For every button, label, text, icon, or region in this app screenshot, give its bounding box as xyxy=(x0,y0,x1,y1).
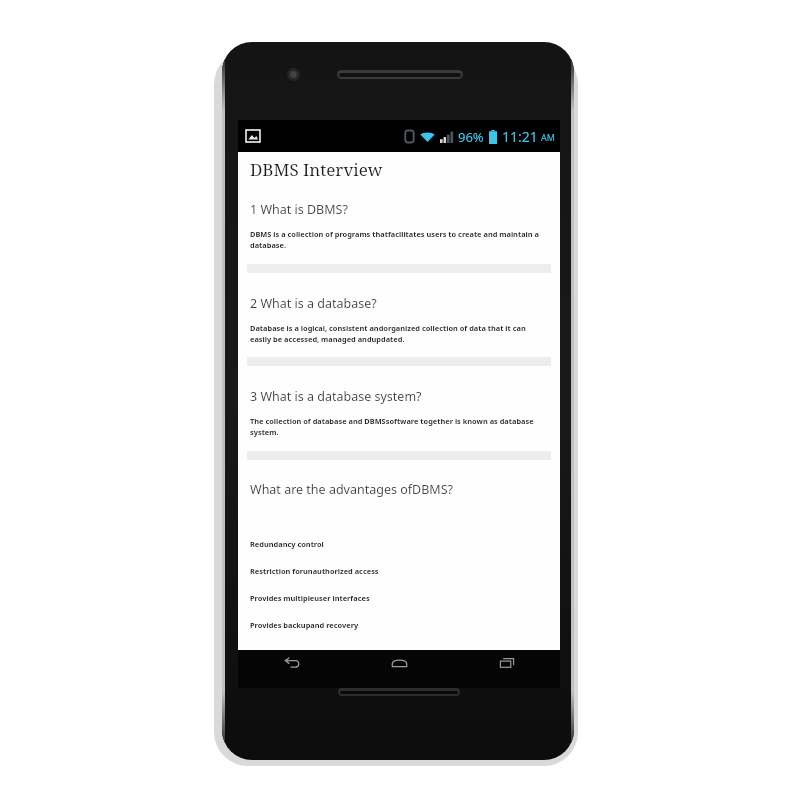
staticText: 11:21 xyxy=(502,127,538,146)
button[interactable]: 3 What is a database system? xyxy=(238,388,560,405)
button[interactable]: Recent apps xyxy=(453,650,560,688)
staticText: Provides multipleuser interfaces xyxy=(250,593,544,603)
staticText: What are the advantages ofDBMS? xyxy=(250,481,453,498)
staticText: Provides backupand recovery xyxy=(250,620,544,630)
button[interactable]: DBMS Interview xyxy=(238,152,560,186)
staticText: 1 What is DBMS? xyxy=(250,201,348,218)
staticText: Database is a logical, consistent andorg… xyxy=(250,323,544,344)
staticText: DBMS Interview xyxy=(250,158,383,181)
staticText: The collection of database and DBMSsoftw… xyxy=(250,416,544,437)
staticText: Restriction forunauthorized access xyxy=(250,566,544,576)
button[interactable]: 2 What is a database? xyxy=(238,295,560,312)
staticText: 96% xyxy=(458,128,484,146)
button[interactable]: Back xyxy=(238,650,346,688)
button[interactable]: 1 What is DBMS? xyxy=(238,201,560,218)
staticText: 2 What is a database? xyxy=(250,295,377,312)
button[interactable]: What are the advantages ofDBMS? xyxy=(238,481,560,498)
other: Image notification xyxy=(246,130,260,142)
staticText: AM xyxy=(541,131,555,143)
staticText: Redundancy control xyxy=(250,539,544,549)
button[interactable]: Home xyxy=(346,650,453,688)
staticText: DBMS is a collection of programs thatfac… xyxy=(250,229,544,250)
staticText: 3 What is a database system? xyxy=(250,388,422,405)
